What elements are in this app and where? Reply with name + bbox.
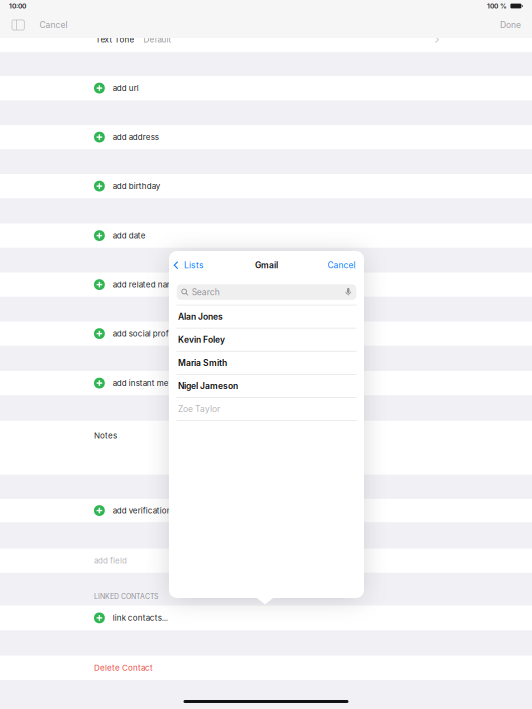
staticText: Text Tone: [95, 35, 134, 44]
button[interactable]: Alan Jones: [169, 305, 364, 328]
button[interactable]: Cancel: [327, 256, 364, 274]
staticText: 10:00: [9, 2, 26, 10]
staticText: add birthday: [113, 181, 160, 191]
staticText: Default: [143, 35, 171, 44]
button[interactable]: add field: [0, 549, 532, 573]
staticText: Kevin Foley: [178, 334, 225, 345]
button[interactable]: Kevin Foley: [169, 328, 364, 351]
staticText: Delete Contact: [94, 663, 153, 673]
button[interactable]: Show sidebar: [12, 20, 24, 30]
button[interactable]: add instant message: [0, 371, 532, 395]
staticText: add address: [113, 132, 159, 142]
staticText: LINKED CONTACTS: [94, 592, 158, 601]
staticText: Search: [192, 287, 220, 297]
button[interactable]: add birthday: [0, 174, 532, 198]
staticText: add date: [113, 231, 146, 240]
button[interactable]: add related name: [0, 272, 532, 297]
staticText: Maria Smith: [178, 358, 227, 368]
button[interactable]: Zoe Taylor: [169, 397, 364, 420]
staticText: add verification code: [113, 506, 194, 515]
staticText: add field: [94, 556, 127, 565]
staticText: Cancel: [39, 20, 67, 30]
button[interactable]: Done: [497, 15, 524, 35]
button[interactable]: add social profile: [0, 321, 532, 346]
staticText: Done: [500, 20, 521, 30]
button[interactable]: add address: [0, 125, 532, 149]
button[interactable]: Maria Smith: [169, 351, 364, 374]
staticText: Alan Jones: [178, 311, 223, 322]
staticText: Gmail: [255, 260, 278, 270]
staticText: add related name: [113, 280, 179, 289]
staticText: Notes: [94, 431, 117, 440]
button[interactable]: Nigel Jameson: [169, 374, 364, 397]
button[interactable]: Cancel: [36, 15, 70, 35]
staticText: link contacts...: [113, 613, 168, 623]
button[interactable]: add date: [0, 223, 532, 248]
button[interactable]: add verification code: [0, 499, 532, 522]
staticText: add social profile: [113, 329, 178, 338]
staticText: Nigel Jameson: [178, 381, 238, 391]
button[interactable]: Lists: [169, 256, 204, 274]
staticText: add instant message: [113, 378, 191, 388]
button[interactable]: Delete Contact: [0, 656, 532, 680]
button[interactable]: link contacts...: [0, 605, 532, 630]
staticText: 100 %: [487, 2, 507, 10]
button[interactable]: Notes: [0, 0, 532, 709]
staticText: Lists: [184, 260, 204, 270]
staticText: Cancel: [327, 260, 355, 270]
staticText: Zoe Taylor: [178, 404, 220, 414]
staticText: add url: [113, 83, 139, 93]
button[interactable]: add url: [0, 76, 532, 100]
